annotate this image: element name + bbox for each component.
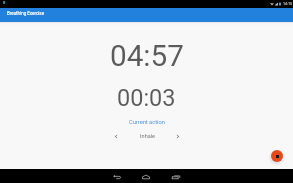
staticText: 14:15: [283, 2, 292, 6]
button[interactable]: Previous action: [105, 128, 127, 144]
button[interactable]: Back: [106, 169, 128, 183]
staticText: 00:03: [117, 84, 176, 112]
button[interactable]: Breathing Exercise: [0, 8, 293, 22]
button[interactable]: Next action: [167, 128, 189, 144]
staticText: Breathing Exercise: [7, 11, 45, 16]
button[interactable]: Inhale: [127, 128, 167, 144]
button[interactable]: Recent apps: [165, 169, 187, 183]
button[interactable]: Stop: [271, 150, 283, 162]
button[interactable]: Home: [135, 169, 157, 183]
staticText: Current action: [129, 119, 165, 126]
staticText: 04:57: [110, 38, 184, 73]
staticText: Inhale: [140, 133, 155, 139]
